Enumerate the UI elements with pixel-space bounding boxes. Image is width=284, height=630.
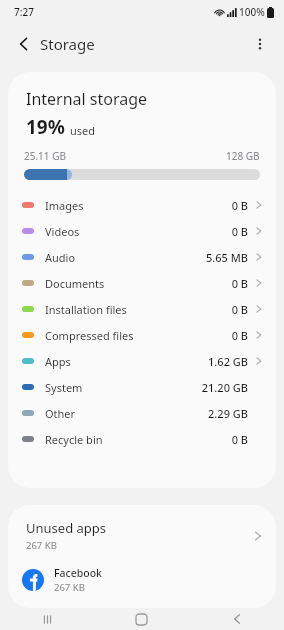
staticText: 5.65 MB [205,250,248,265]
staticText: Documents [45,276,105,291]
staticText: Apps [45,354,71,369]
button[interactable]: More options [244,28,276,60]
staticText: 0 B [231,224,248,239]
staticText: Facebook [54,566,102,580]
staticText: used [70,123,96,138]
staticText: Internal storage [26,88,148,110]
staticText: 1.62 GB [208,354,248,369]
staticText: 0 B [231,276,248,291]
staticText: 21.20 GB [201,380,248,395]
button[interactable]: Recent apps [0,608,94,630]
button[interactable]: Apps [8,348,276,374]
staticText: System [45,380,83,395]
staticText: Audio [45,250,76,265]
button[interactable]: Home [94,608,189,630]
button[interactable]: System [8,374,276,400]
button[interactable]: Facebook [8,560,276,608]
button[interactable]: Documents [8,270,276,296]
staticText: Images [45,198,84,213]
button[interactable]: Audio [8,244,276,270]
staticText: Storage [40,34,95,54]
button[interactable]: Other [8,400,276,426]
staticText: Installation files [45,302,127,317]
staticText: 7:27 [14,5,34,19]
button[interactable]: Recycle bin [8,426,276,452]
staticText: 0 B [231,198,248,213]
staticText: 0 B [231,302,248,317]
button[interactable]: Videos [8,218,276,244]
button[interactable]: Unused apps [8,505,276,560]
button[interactable]: Back [8,28,40,60]
staticText: Videos [45,224,80,239]
staticText: 128 GB [226,149,260,163]
staticText: 0 B [231,432,248,447]
staticText: Other [45,406,76,421]
staticText: Compressed files [45,328,134,343]
staticText: 100% [239,5,265,19]
button[interactable]: Compressed files [8,322,276,348]
staticText: 2.29 GB [208,406,248,421]
staticText: 0 B [231,328,248,343]
staticText: Recycle bin [45,432,103,447]
staticText: 267 KB [26,539,57,552]
button[interactable]: Installation files [8,296,276,322]
staticText: 19% [26,114,65,140]
button[interactable]: Back [189,608,284,630]
staticText: 267 KB [54,581,85,594]
button[interactable]: Images [8,192,276,218]
staticText: 25.11 GB [24,149,66,163]
staticText: Unused apps [26,519,107,537]
